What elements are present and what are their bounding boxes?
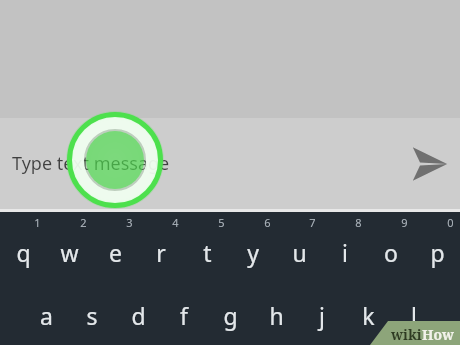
staticText: p: [430, 237, 445, 268]
staticText: 0: [447, 215, 454, 230]
staticText: 1: [34, 215, 41, 230]
button[interactable]: Type text message: [0, 118, 460, 209]
button[interactable]: k: [345, 293, 391, 337]
staticText: 5: [218, 215, 225, 230]
staticText: 2: [80, 215, 87, 230]
staticText: a: [40, 300, 53, 331]
staticText: j: [319, 300, 325, 331]
button[interactable]: 5: [199, 212, 243, 232]
button[interactable]: p: [414, 232, 460, 272]
staticText: wiki: [391, 325, 422, 344]
button[interactable]: q: [0, 232, 46, 272]
staticText: h: [269, 300, 284, 331]
staticText: l: [411, 300, 417, 331]
button[interactable]: s: [69, 293, 115, 337]
staticText: 4: [172, 215, 179, 230]
button[interactable]: g: [207, 293, 253, 337]
button[interactable]: 4: [153, 212, 197, 232]
staticText: w: [60, 237, 79, 268]
staticText: g: [223, 300, 238, 331]
button[interactable]: w: [46, 232, 92, 272]
button[interactable]: f: [161, 293, 207, 337]
staticText: 3: [126, 215, 133, 230]
button[interactable]: 7: [290, 212, 334, 232]
staticText: i: [342, 237, 348, 268]
button[interactable]: o: [368, 232, 414, 272]
button[interactable]: l: [391, 293, 437, 337]
staticText: u: [292, 237, 307, 268]
staticText: How: [422, 325, 455, 344]
button[interactable]: a: [23, 293, 69, 337]
staticText: q: [16, 237, 31, 268]
button[interactable]: 3: [107, 212, 151, 232]
button[interactable]: d: [115, 293, 161, 337]
button[interactable]: u: [276, 232, 322, 272]
staticText: e: [109, 237, 122, 268]
button[interactable]: 6: [245, 212, 289, 232]
staticText: Type text message: [12, 151, 170, 176]
button[interactable]: 9: [382, 212, 426, 232]
button[interactable]: h: [253, 293, 299, 337]
staticText: s: [86, 300, 98, 331]
staticText: k: [362, 300, 375, 331]
button[interactable]: r: [138, 232, 184, 272]
button[interactable]: Send: [400, 134, 456, 194]
staticText: o: [384, 237, 398, 268]
button[interactable]: 8: [336, 212, 380, 232]
staticText: d: [131, 300, 146, 331]
button[interactable]: 2: [61, 212, 105, 232]
button[interactable]: j: [299, 293, 345, 337]
button[interactable]: y: [230, 232, 276, 272]
button[interactable]: i: [322, 232, 368, 272]
staticText: 9: [401, 215, 408, 230]
staticText: f: [180, 300, 188, 331]
staticText: 7: [309, 215, 316, 230]
button[interactable]: 0: [428, 212, 460, 232]
button[interactable]: 1: [15, 212, 59, 232]
button[interactable]: e: [92, 232, 138, 272]
staticText: 6: [264, 215, 271, 230]
staticText: r: [156, 237, 166, 268]
staticText: y: [247, 237, 259, 268]
staticText: t: [203, 237, 212, 268]
button[interactable]: t: [184, 232, 230, 272]
staticText: 8: [355, 215, 362, 230]
